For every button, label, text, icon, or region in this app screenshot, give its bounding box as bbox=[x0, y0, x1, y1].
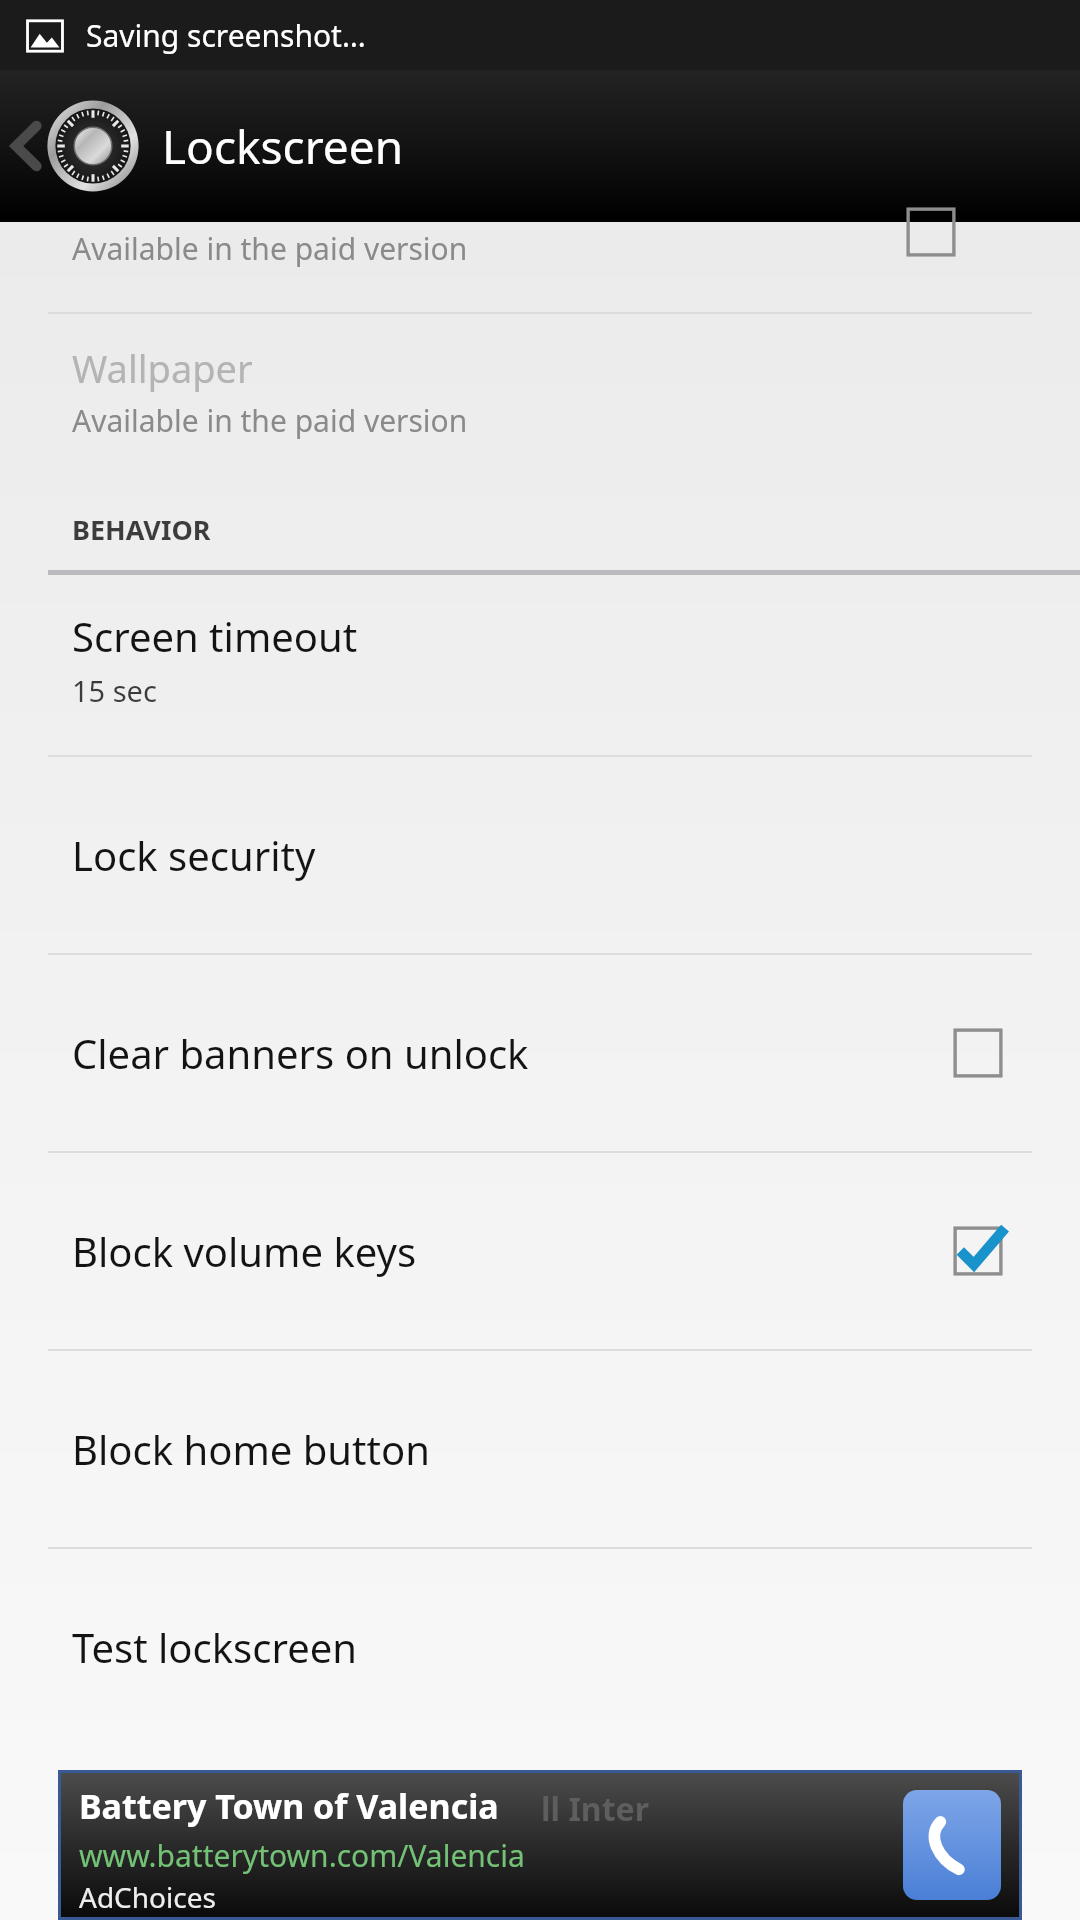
staticText: AdChoices bbox=[79, 1878, 216, 1916]
staticText: Saving screenshot… bbox=[86, 15, 366, 56]
button[interactable]: Lock security bbox=[0, 757, 1080, 953]
staticText: Test lockscreen bbox=[72, 1620, 1004, 1674]
button[interactable]: Clear banners on unlock bbox=[0, 955, 1080, 1151]
button[interactable]: Wallpaper bbox=[0, 314, 1080, 464]
button[interactable]: Call bbox=[903, 1790, 1001, 1900]
staticText: Wallpaper bbox=[72, 342, 253, 394]
staticText: www.batterytown.com/Valencia bbox=[79, 1835, 525, 1876]
button[interactable]: Block volume keys bbox=[0, 1153, 1080, 1349]
button[interactable]: Screen timeout bbox=[0, 575, 1080, 755]
staticText: BEHAVIOR bbox=[72, 511, 211, 548]
button[interactable]: Available in the paid version bbox=[0, 222, 1080, 312]
button[interactable]: ll Inter bbox=[61, 1773, 1019, 1917]
staticText: Clear banners on unlock bbox=[72, 1026, 952, 1080]
button[interactable]: Navigate up bbox=[0, 70, 418, 222]
staticText: Available in the paid version bbox=[72, 228, 468, 269]
staticText: Battery Town of Valencia bbox=[79, 1783, 499, 1829]
staticText: Lockscreen bbox=[162, 115, 404, 178]
staticText: Lock security bbox=[72, 828, 1004, 882]
staticText: Block volume keys bbox=[72, 1224, 952, 1278]
staticText: 15 sec bbox=[72, 671, 157, 710]
button[interactable]: Test lockscreen bbox=[0, 1549, 1080, 1745]
staticText: Screen timeout bbox=[72, 609, 358, 663]
staticText: Block home button bbox=[72, 1422, 1004, 1476]
staticText: ll Inter bbox=[541, 1787, 649, 1831]
staticText: Available in the paid version bbox=[72, 400, 468, 441]
button[interactable]: Block home button bbox=[0, 1351, 1080, 1547]
